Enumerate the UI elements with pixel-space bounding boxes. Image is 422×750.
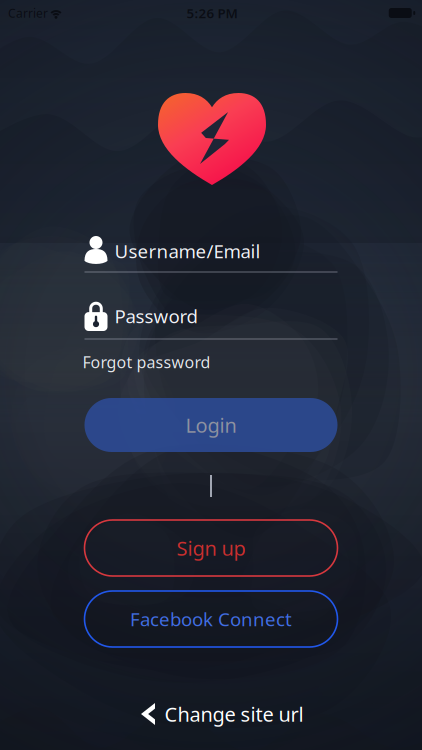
staticText: Sign up — [176, 535, 245, 561]
staticText: Facebook Connect — [130, 607, 292, 631]
staticText: Carrier — [8, 5, 48, 21]
staticText: Password — [114, 304, 197, 328]
staticText: Login — [185, 412, 236, 438]
button[interactable]: Login — [84, 398, 337, 452]
button[interactable]: Change site url — [139, 694, 319, 734]
staticText: Username/Email — [114, 239, 260, 263]
staticText: Change site url — [164, 701, 303, 727]
staticText: Forgot password — [82, 351, 210, 373]
button[interactable]: Forgot password — [82, 351, 222, 373]
button[interactable]: Sign up — [84, 520, 337, 576]
button[interactable]: Facebook Connect — [84, 591, 337, 647]
staticText: 5:26 PM — [186, 4, 237, 22]
